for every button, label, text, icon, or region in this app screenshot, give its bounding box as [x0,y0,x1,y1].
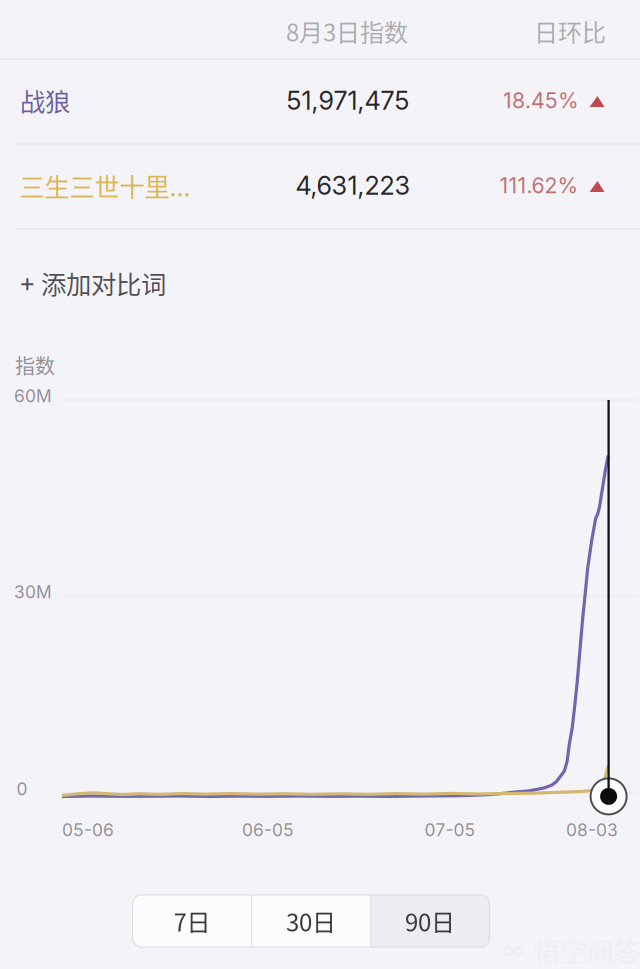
staticText: 7日 [173,904,210,938]
staticText: 07-05 [424,819,475,840]
button[interactable]: 90日 [370,895,489,947]
staticText: 8月3日指数 [286,14,408,48]
staticText: 三生三世十里... [19,167,190,204]
staticText: 90日 [405,904,455,938]
staticText: 日环比 [534,14,606,48]
staticText: 30日 [286,904,336,938]
staticText: 51,971,475 [286,85,409,116]
staticText: 18.45% [503,88,579,113]
staticText: 05-06 [62,819,114,840]
staticText: 添加对比词 [41,265,166,301]
staticText: 06-05 [242,819,294,840]
staticText: 30M [14,581,52,602]
staticText: 111.62% [499,173,578,198]
staticText: 战狼 [20,82,70,119]
staticText: 08-03 [566,819,618,840]
staticText: 指数 [15,350,55,379]
staticText: 60M [14,385,52,406]
button[interactable]: 三生三世十里... [0,143,640,228]
staticText: 4,631,223 [295,170,410,201]
staticText: 0 [16,778,27,799]
button[interactable]: 30日 [251,895,370,947]
button[interactable]: + [0,247,640,319]
staticText: + [19,268,36,298]
button[interactable]: 7日 [132,895,251,947]
button[interactable]: 战狼 [0,58,640,143]
